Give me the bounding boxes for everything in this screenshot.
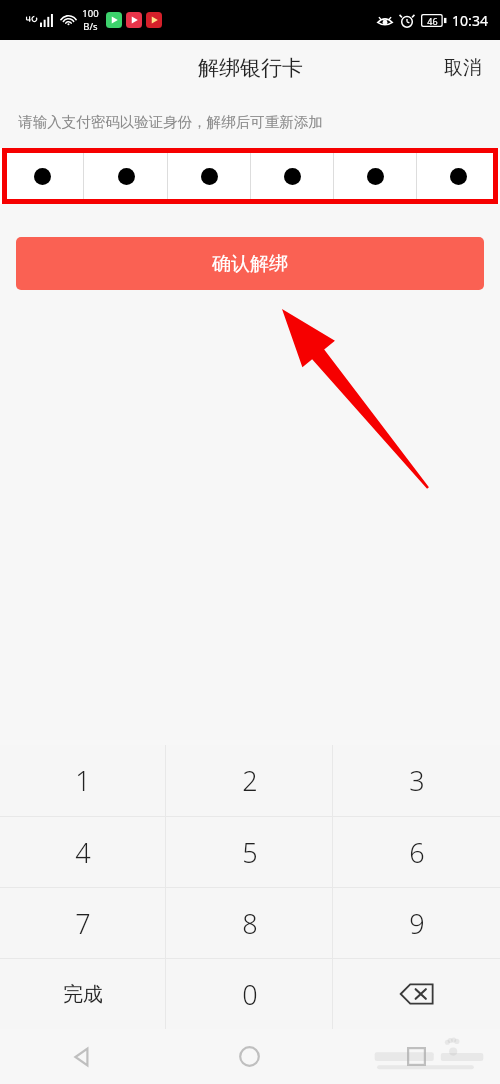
staticText: 1 xyxy=(75,762,91,799)
button[interactable]: 1 xyxy=(0,745,166,816)
staticText: 46 xyxy=(427,15,438,27)
staticText: 确认解绑 xyxy=(212,252,288,276)
staticText: B/s xyxy=(83,20,98,33)
button[interactable]: Recents xyxy=(333,1029,500,1084)
staticText: 取消 xyxy=(444,56,482,80)
staticText: 5 xyxy=(242,834,258,871)
staticText: 请输入支付密码以验证身份，解绑后可重新添加 xyxy=(18,113,323,131)
staticText: 100 xyxy=(82,7,99,20)
button[interactable] xyxy=(0,148,500,204)
button[interactable]: 0 xyxy=(166,959,333,1029)
staticText: 6 xyxy=(409,834,425,871)
staticText: 9 xyxy=(409,905,425,942)
staticText: 7 xyxy=(75,905,91,942)
button[interactable]: Backspace xyxy=(333,959,500,1029)
button[interactable]: Back xyxy=(0,1029,166,1084)
button[interactable]: 确认解绑 xyxy=(16,237,484,290)
staticText: 4 xyxy=(75,834,91,871)
staticText: 8 xyxy=(242,905,258,942)
button[interactable]: 2 xyxy=(166,745,333,816)
staticText: 3 xyxy=(409,762,425,799)
button[interactable]: 4 xyxy=(0,817,166,887)
button[interactable]: 8 xyxy=(166,888,333,958)
button[interactable]: 3 xyxy=(333,745,500,816)
staticText: 2 xyxy=(242,762,258,799)
staticText: 解绑银行卡 xyxy=(198,55,303,81)
staticText: 完成 xyxy=(63,982,103,1007)
button[interactable]: 完成 xyxy=(0,959,166,1029)
button[interactable]: 7 xyxy=(0,888,166,958)
staticText: 0 xyxy=(242,976,258,1013)
button[interactable]: 6 xyxy=(333,817,500,887)
button[interactable]: 9 xyxy=(333,888,500,958)
button[interactable]: 取消 xyxy=(426,46,500,90)
staticText: 10:34 xyxy=(452,11,488,30)
button[interactable]: 5 xyxy=(166,817,333,887)
button[interactable]: Home xyxy=(166,1029,333,1084)
